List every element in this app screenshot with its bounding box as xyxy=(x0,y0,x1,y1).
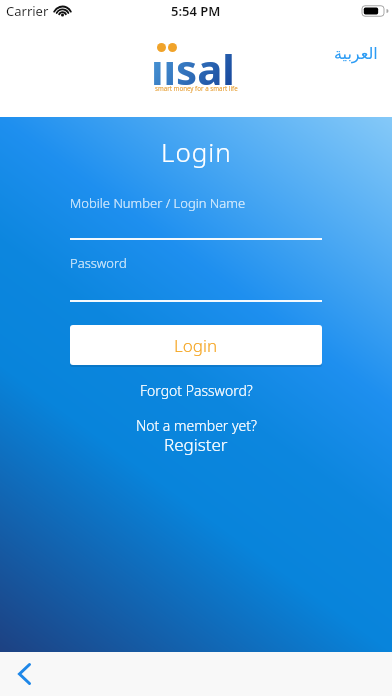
staticText: Login xyxy=(161,134,232,169)
staticText: 5:54 PM xyxy=(171,2,221,20)
staticText: Login xyxy=(174,334,218,357)
staticText: Not a member yet? xyxy=(136,416,257,435)
staticText: Carrier xyxy=(6,2,49,20)
button[interactable]: Forgot Password? xyxy=(140,381,253,400)
staticText: ıısal xyxy=(151,40,235,97)
button[interactable]: Login xyxy=(70,325,322,365)
button[interactable] xyxy=(8,658,40,690)
button[interactable] xyxy=(70,187,322,241)
button[interactable]: العربية xyxy=(334,44,378,63)
staticText: smart money for a smart life xyxy=(155,84,238,92)
button[interactable]: Register xyxy=(164,433,228,456)
staticText: Mobile Number / Login Name xyxy=(70,194,246,212)
staticText: Password xyxy=(70,254,127,272)
button[interactable] xyxy=(70,247,322,303)
